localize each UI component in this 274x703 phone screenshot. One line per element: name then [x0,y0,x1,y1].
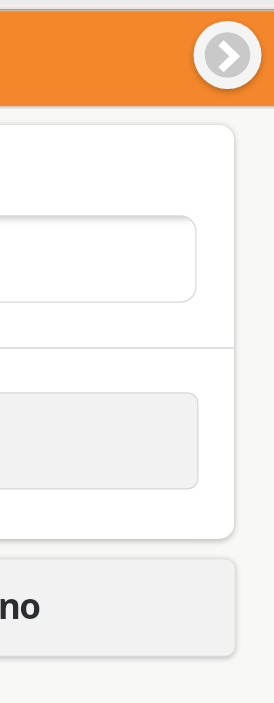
button[interactable] [0,559,195,657]
button[interactable]: Siguiente [194,22,261,89]
staticText: no [0,582,40,630]
